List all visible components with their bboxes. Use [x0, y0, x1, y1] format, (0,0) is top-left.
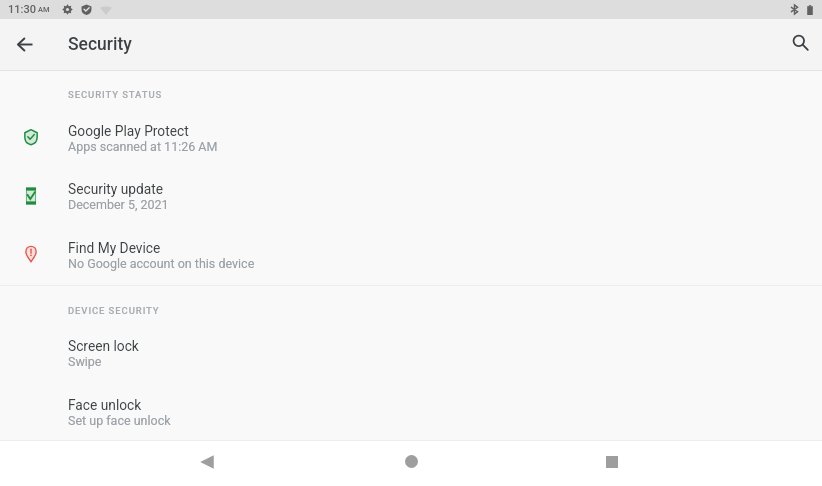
button[interactable]: Recent apps: [582, 441, 642, 486]
staticText: Security update: [68, 181, 163, 197]
staticText: Security: [68, 34, 132, 55]
button[interactable]: Find My Device: [0, 226, 822, 284]
button[interactable]: Back: [177, 441, 237, 486]
staticText: AM: [38, 5, 50, 14]
staticText: Google Play Protect: [68, 123, 189, 139]
button[interactable]: Screen lock: [0, 324, 822, 382]
staticText: Find My Device: [68, 240, 161, 256]
button[interactable]: Security update: [0, 167, 822, 225]
staticText: DEVICE SECURITY: [68, 305, 160, 316]
staticText: SECURITY STATUS: [68, 89, 163, 100]
staticText: Face unlock: [68, 397, 142, 413]
button[interactable]: Google Play Protect: [0, 109, 822, 167]
button[interactable]: Home: [381, 441, 441, 486]
button[interactable]: Back: [3, 23, 47, 67]
button[interactable]: Search: [778, 23, 822, 67]
staticText: December 5, 2021: [68, 197, 169, 212]
staticText: Screen lock: [68, 338, 139, 354]
button[interactable]: Face unlock: [0, 383, 822, 441]
staticText: No Google account on this device: [68, 256, 255, 271]
staticText: 11:30: [8, 3, 36, 16]
staticText: Set up face unlock: [68, 413, 171, 428]
staticText: Swipe: [68, 354, 102, 369]
staticText: Apps scanned at 11:26 AM: [68, 139, 218, 154]
